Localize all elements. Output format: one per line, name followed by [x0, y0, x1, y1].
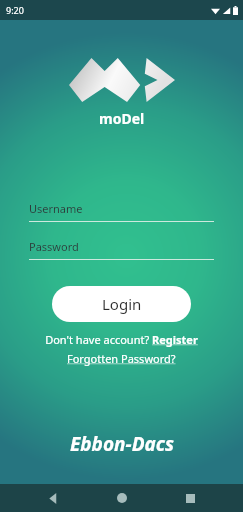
staticText: Ebbon-Dacs	[70, 431, 174, 457]
staticText: Login	[102, 294, 142, 314]
button[interactable]: Recent apps	[174, 484, 206, 512]
staticText: moDel	[99, 109, 145, 128]
staticText: Forgotten Password?	[67, 351, 176, 366]
staticText: Username	[29, 201, 83, 216]
button[interactable]: Login	[52, 286, 191, 322]
button[interactable]: Forgotten Password?	[0, 351, 243, 366]
staticText: Password	[29, 239, 79, 254]
button[interactable]: Don't have account? Register	[0, 332, 243, 347]
staticText: Don't have account? Register	[45, 332, 198, 347]
button[interactable]: Home	[106, 484, 138, 512]
button[interactable]: Back	[37, 484, 69, 512]
staticText: 9:20	[6, 4, 24, 16]
